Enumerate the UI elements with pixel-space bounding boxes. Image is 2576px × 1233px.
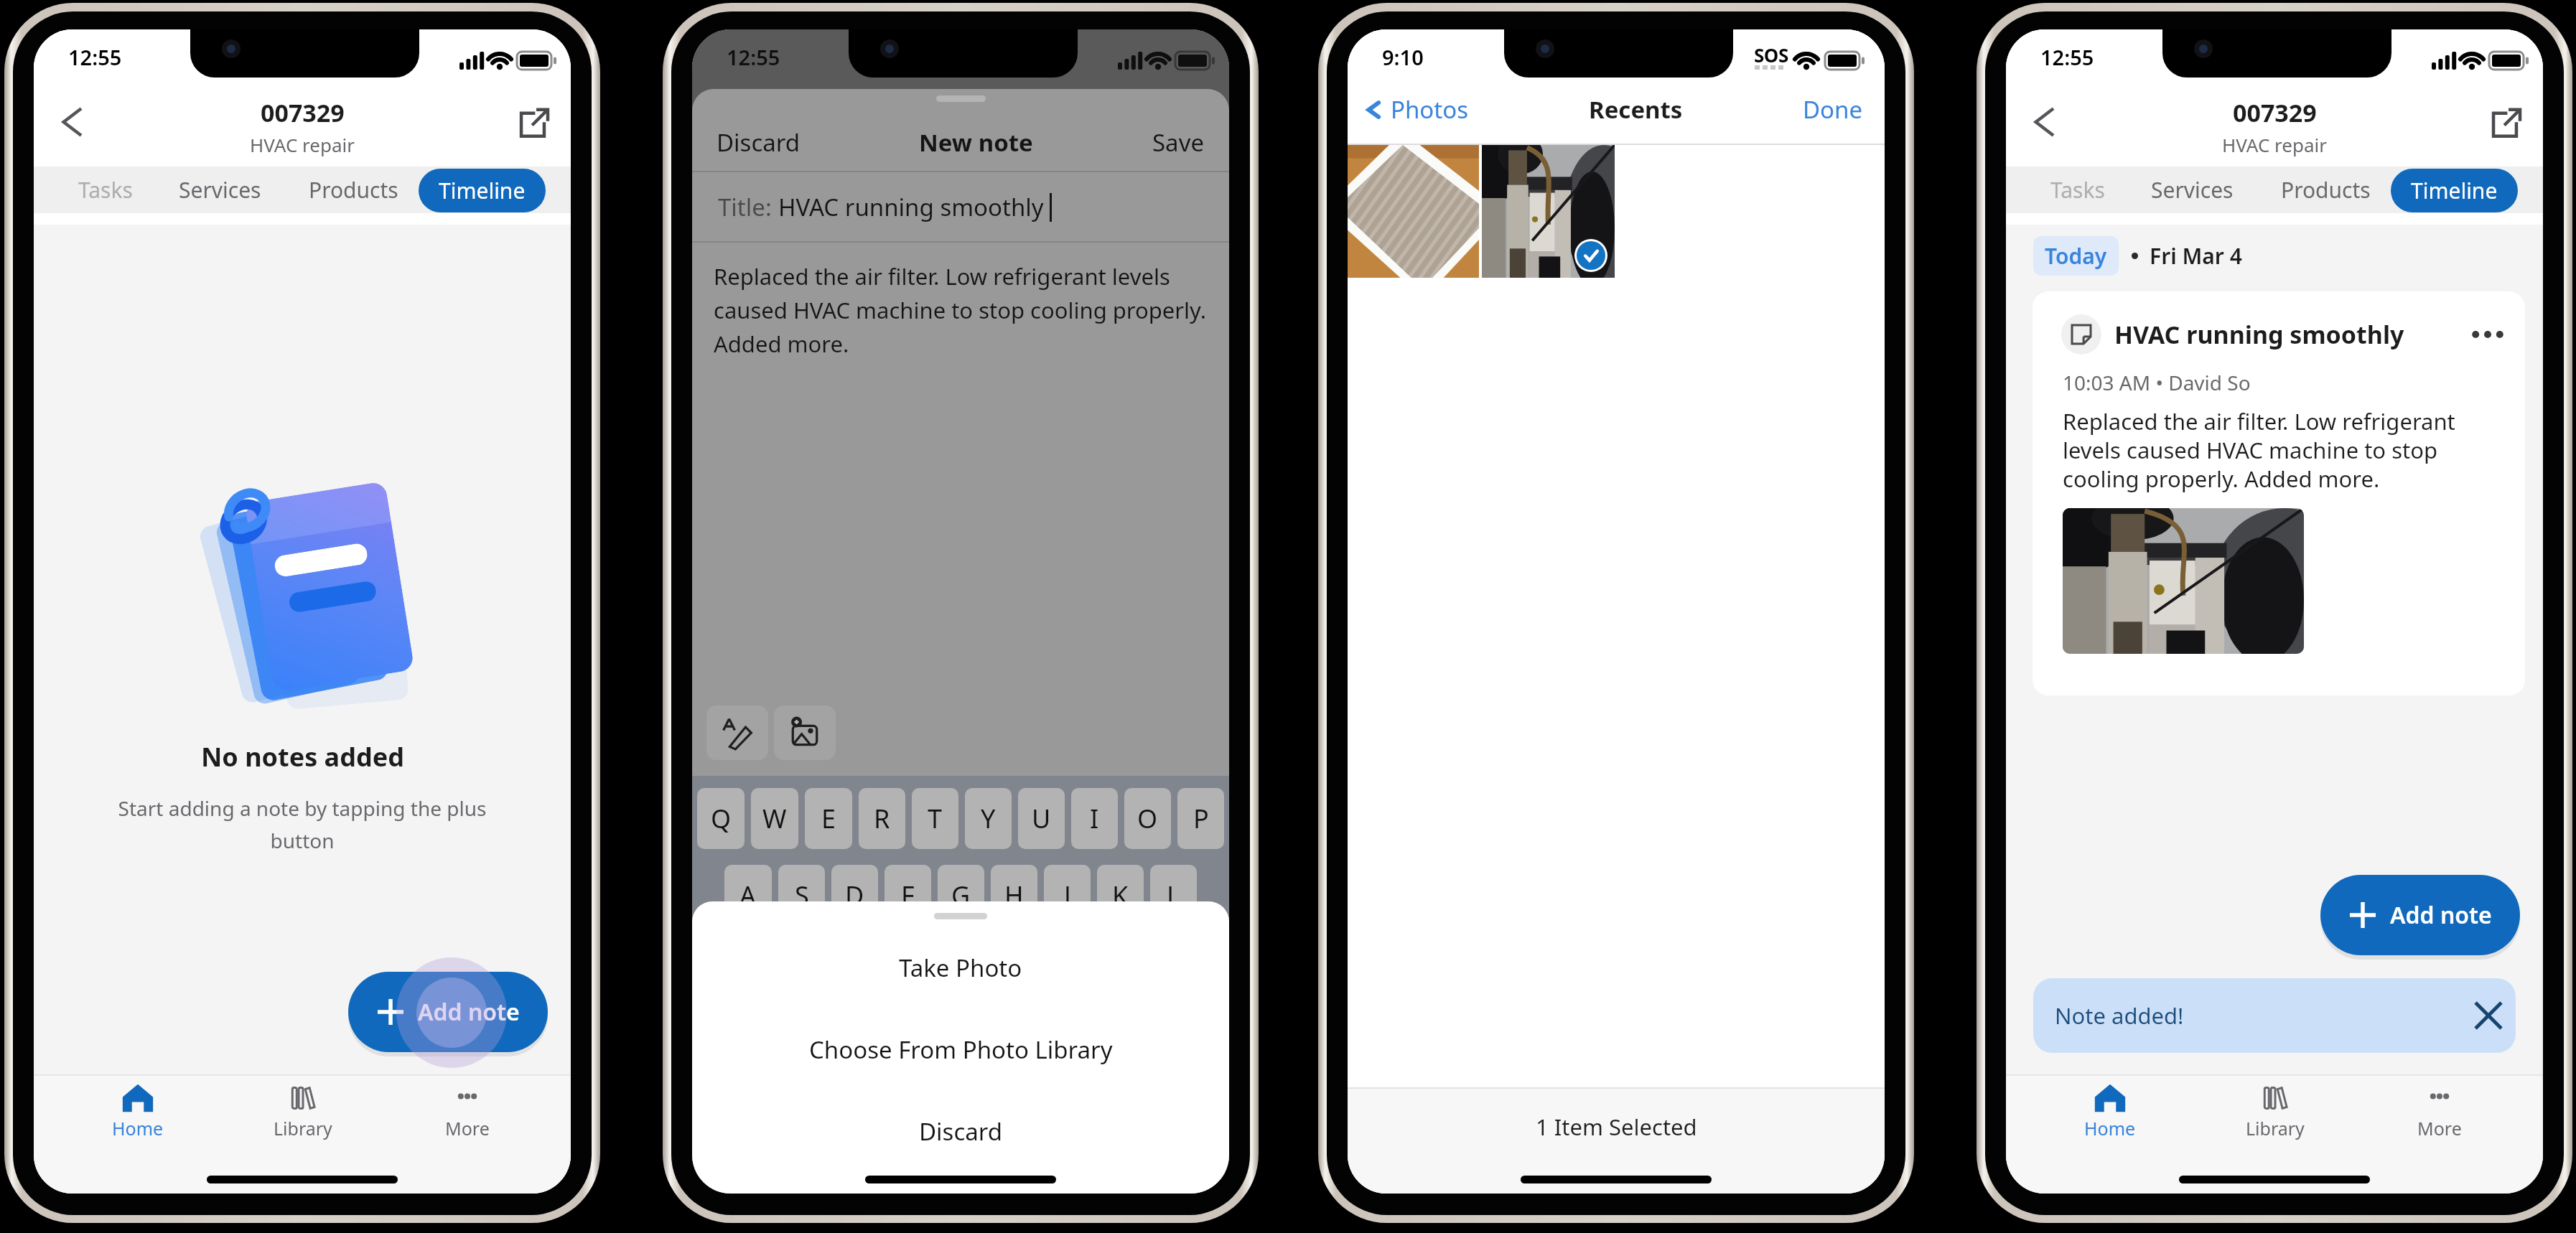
button[interactable]: J [1044,865,1091,926]
staticText: SOS [1754,42,1788,67]
button[interactable]: Photo 2, selected [1482,145,1615,278]
button[interactable]: Dismiss [2468,995,2509,1036]
staticText: Note added! [2055,1000,2184,1031]
staticText: L [1167,878,1180,913]
staticText: Discard [919,1115,1003,1148]
staticText: 12:55 [2040,43,2094,71]
staticText: 007329 [261,96,345,129]
staticText: U [1032,801,1051,836]
staticText: Q [711,801,732,836]
button[interactable]: Timeline [2391,169,2518,212]
staticText: Choose From Photo Library [809,1033,1113,1066]
button[interactable]: Markup [706,705,768,760]
button[interactable]: F [885,865,931,926]
staticText: W [762,801,787,836]
button[interactable]: Discard [717,126,801,159]
button[interactable]: Library [2193,1076,2357,1155]
staticText: Home [112,1116,164,1140]
button[interactable]: W [751,788,798,849]
button[interactable]: Done [1803,93,1863,126]
button[interactable]: P [1177,788,1224,849]
staticText: Photos [1391,93,1469,126]
button[interactable]: More options [2470,317,2505,352]
button[interactable]: Choose From Photo Library [692,1028,1229,1070]
button[interactable]: R [859,788,905,849]
button[interactable]: More [385,1076,549,1155]
button[interactable]: G [938,865,984,926]
button[interactable]: E [805,788,852,849]
button[interactable]: H [991,865,1037,926]
button[interactable]: Q [697,788,745,849]
button[interactable]: Home [2027,1076,2193,1155]
staticText: Add note [2390,899,2492,931]
button[interactable]: A [724,865,772,926]
staticText: Done [1803,93,1863,126]
button[interactable]: D [831,865,878,926]
staticText: Save [1152,126,1205,159]
button[interactable]: T [912,788,958,849]
staticText: More [445,1116,490,1140]
button[interactable]: K [1097,865,1144,926]
button[interactable]: Services [168,167,272,213]
button[interactable]: Tasks [2020,167,2135,213]
staticText: Fri Mar 4 [2150,241,2242,271]
button[interactable]: Take Photo [692,947,1229,988]
button[interactable]: U [1018,788,1065,849]
staticText: No notes added [201,739,404,774]
button[interactable]: Services [2140,167,2244,213]
button[interactable]: More [2357,1076,2521,1155]
staticText: Replaced the air filter. Low refrigerant… [2063,406,2455,494]
button[interactable]: HVAC running smoothly [2033,291,2525,695]
button[interactable]: Home [55,1076,220,1155]
staticText: Library [274,1116,332,1140]
staticText: Y [981,801,996,836]
button[interactable]: Timeline [419,169,546,212]
button[interactable]: Save [1152,126,1205,159]
button[interactable]: Y [965,788,1012,849]
staticText: S [795,878,809,913]
button[interactable]: Products [2274,167,2378,213]
button[interactable]: Today [2033,236,2119,276]
button[interactable]: Insert photo [774,705,836,760]
button[interactable]: Photo 1 [1348,145,1479,278]
button[interactable]: Products [302,167,406,213]
staticText: A [739,878,757,913]
button[interactable]: Share [2484,103,2526,144]
button[interactable]: Add note [2320,875,2520,955]
staticText: HVAC repair [250,132,355,157]
staticText: Add note [418,996,520,1028]
staticText: 12:55 [727,43,780,71]
button[interactable]: Add note [348,972,548,1052]
staticText: O [1137,801,1158,836]
staticText: H [1004,878,1024,913]
button[interactable]: Back [2020,96,2072,148]
button[interactable]: Photos [1361,93,1469,126]
staticText: Tasks [78,175,133,205]
staticText: HVAC repair [2222,132,2328,157]
button[interactable]: I [1071,788,1118,849]
button[interactable]: Share [512,103,554,144]
staticText: Products [2281,175,2371,205]
staticText: Services [179,175,261,205]
staticText: HVAC running smoothly [2114,318,2404,351]
staticText: T [928,801,943,836]
button[interactable]: Back [48,96,100,148]
button[interactable]: Tasks [48,167,163,213]
button[interactable]: L [1150,865,1197,926]
staticText: 9:10 [1382,43,1424,71]
staticText: Title: [718,191,778,223]
staticText: E [821,801,836,836]
staticText: 10:03 AM • David So [2063,369,2251,396]
staticText: Start adding a note by tapping the plus … [103,794,502,855]
staticText: 1 Item Selected [1536,1112,1697,1142]
button[interactable]: Library [220,1076,385,1155]
button[interactable]: O [1124,788,1171,849]
staticText: Discard [717,126,801,159]
button[interactable]: Discard [692,1110,1229,1152]
staticText: F [901,878,915,913]
button[interactable]: S [778,865,825,926]
staticText: R [874,801,890,836]
staticText: More [2417,1116,2462,1140]
staticText: New note [919,126,1033,159]
staticText: I [1090,801,1099,836]
